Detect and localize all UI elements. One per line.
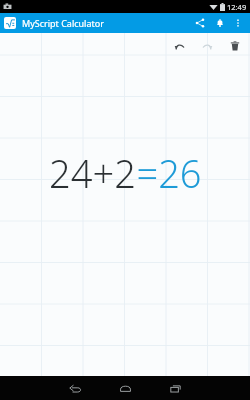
- staticText: =26: [136, 147, 202, 199]
- button[interactable]: Redo: [197, 36, 217, 56]
- button[interactable]: More options: [230, 15, 246, 31]
- staticText: 12:49: [227, 2, 247, 12]
- button[interactable]: Home: [100, 376, 150, 400]
- button[interactable]: Share: [190, 13, 210, 33]
- button[interactable]: Back: [50, 376, 100, 400]
- button[interactable]: Notifications: [210, 13, 230, 33]
- button[interactable]: Undo: [169, 36, 189, 56]
- button[interactable]: Delete: [225, 36, 245, 56]
- staticText: 24+2: [49, 147, 136, 199]
- button[interactable]: Recent apps: [150, 376, 200, 400]
- staticText: MyScript Calculator: [22, 17, 190, 29]
